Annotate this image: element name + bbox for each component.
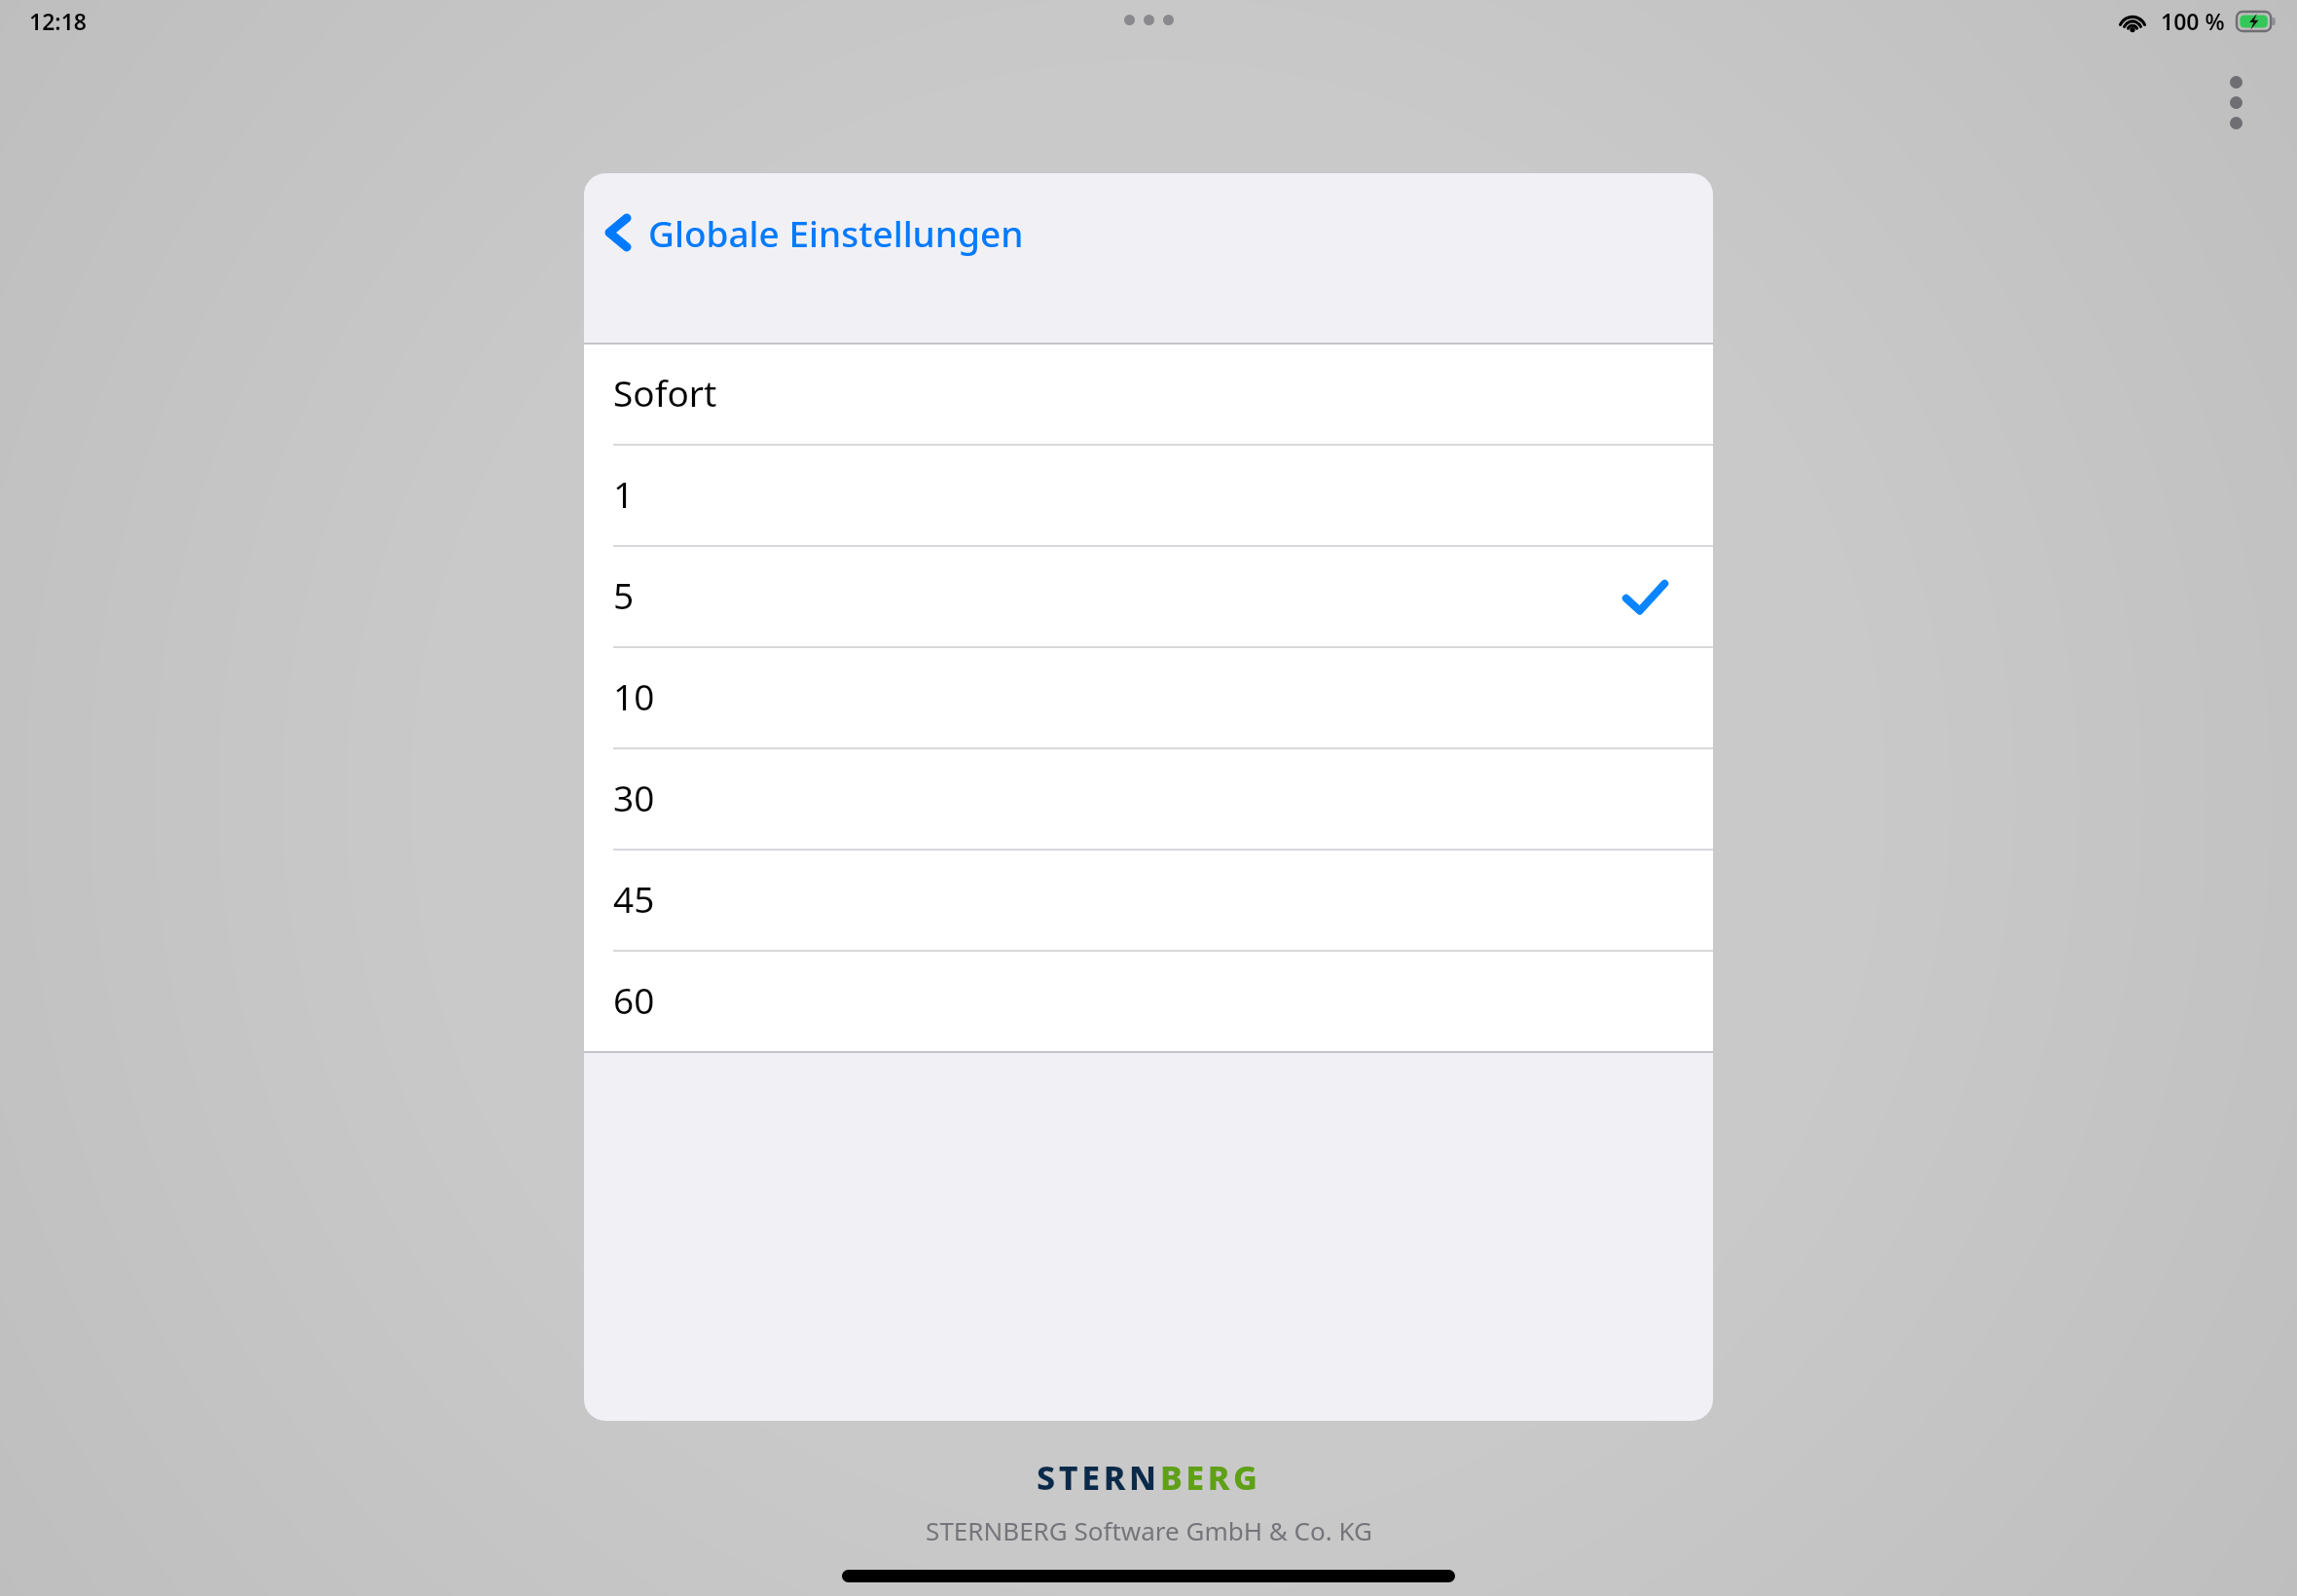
staticText: 5	[613, 570, 635, 619]
button[interactable]: Sofort	[584, 345, 1713, 446]
staticText: STERN	[1037, 1455, 1160, 1500]
staticText: 100 %	[2161, 6, 2225, 36]
button[interactable]: Mehr Optionen	[2216, 68, 2256, 137]
staticText: STERNBERG Software GmbH & Co. KG	[926, 1513, 1372, 1547]
button[interactable]: 5	[584, 547, 1713, 648]
button[interactable]: Globale Einstellungen	[584, 200, 1047, 267]
button[interactable]: 1	[584, 446, 1713, 547]
staticText: 12:18	[29, 6, 87, 36]
button[interactable]: 30	[584, 749, 1713, 851]
button[interactable]: 45	[584, 851, 1713, 952]
staticText: Sofort	[613, 368, 717, 417]
staticText: 10	[613, 671, 655, 720]
button[interactable]: 10	[584, 648, 1713, 749]
staticText: 60	[613, 975, 655, 1024]
staticText: Globale Einstellungen	[648, 208, 1024, 257]
staticText: BERG	[1160, 1455, 1261, 1500]
staticText: 1	[613, 469, 635, 518]
button[interactable]: 60	[584, 952, 1713, 1053]
staticText: 45	[613, 874, 655, 923]
staticText: 30	[613, 773, 655, 821]
